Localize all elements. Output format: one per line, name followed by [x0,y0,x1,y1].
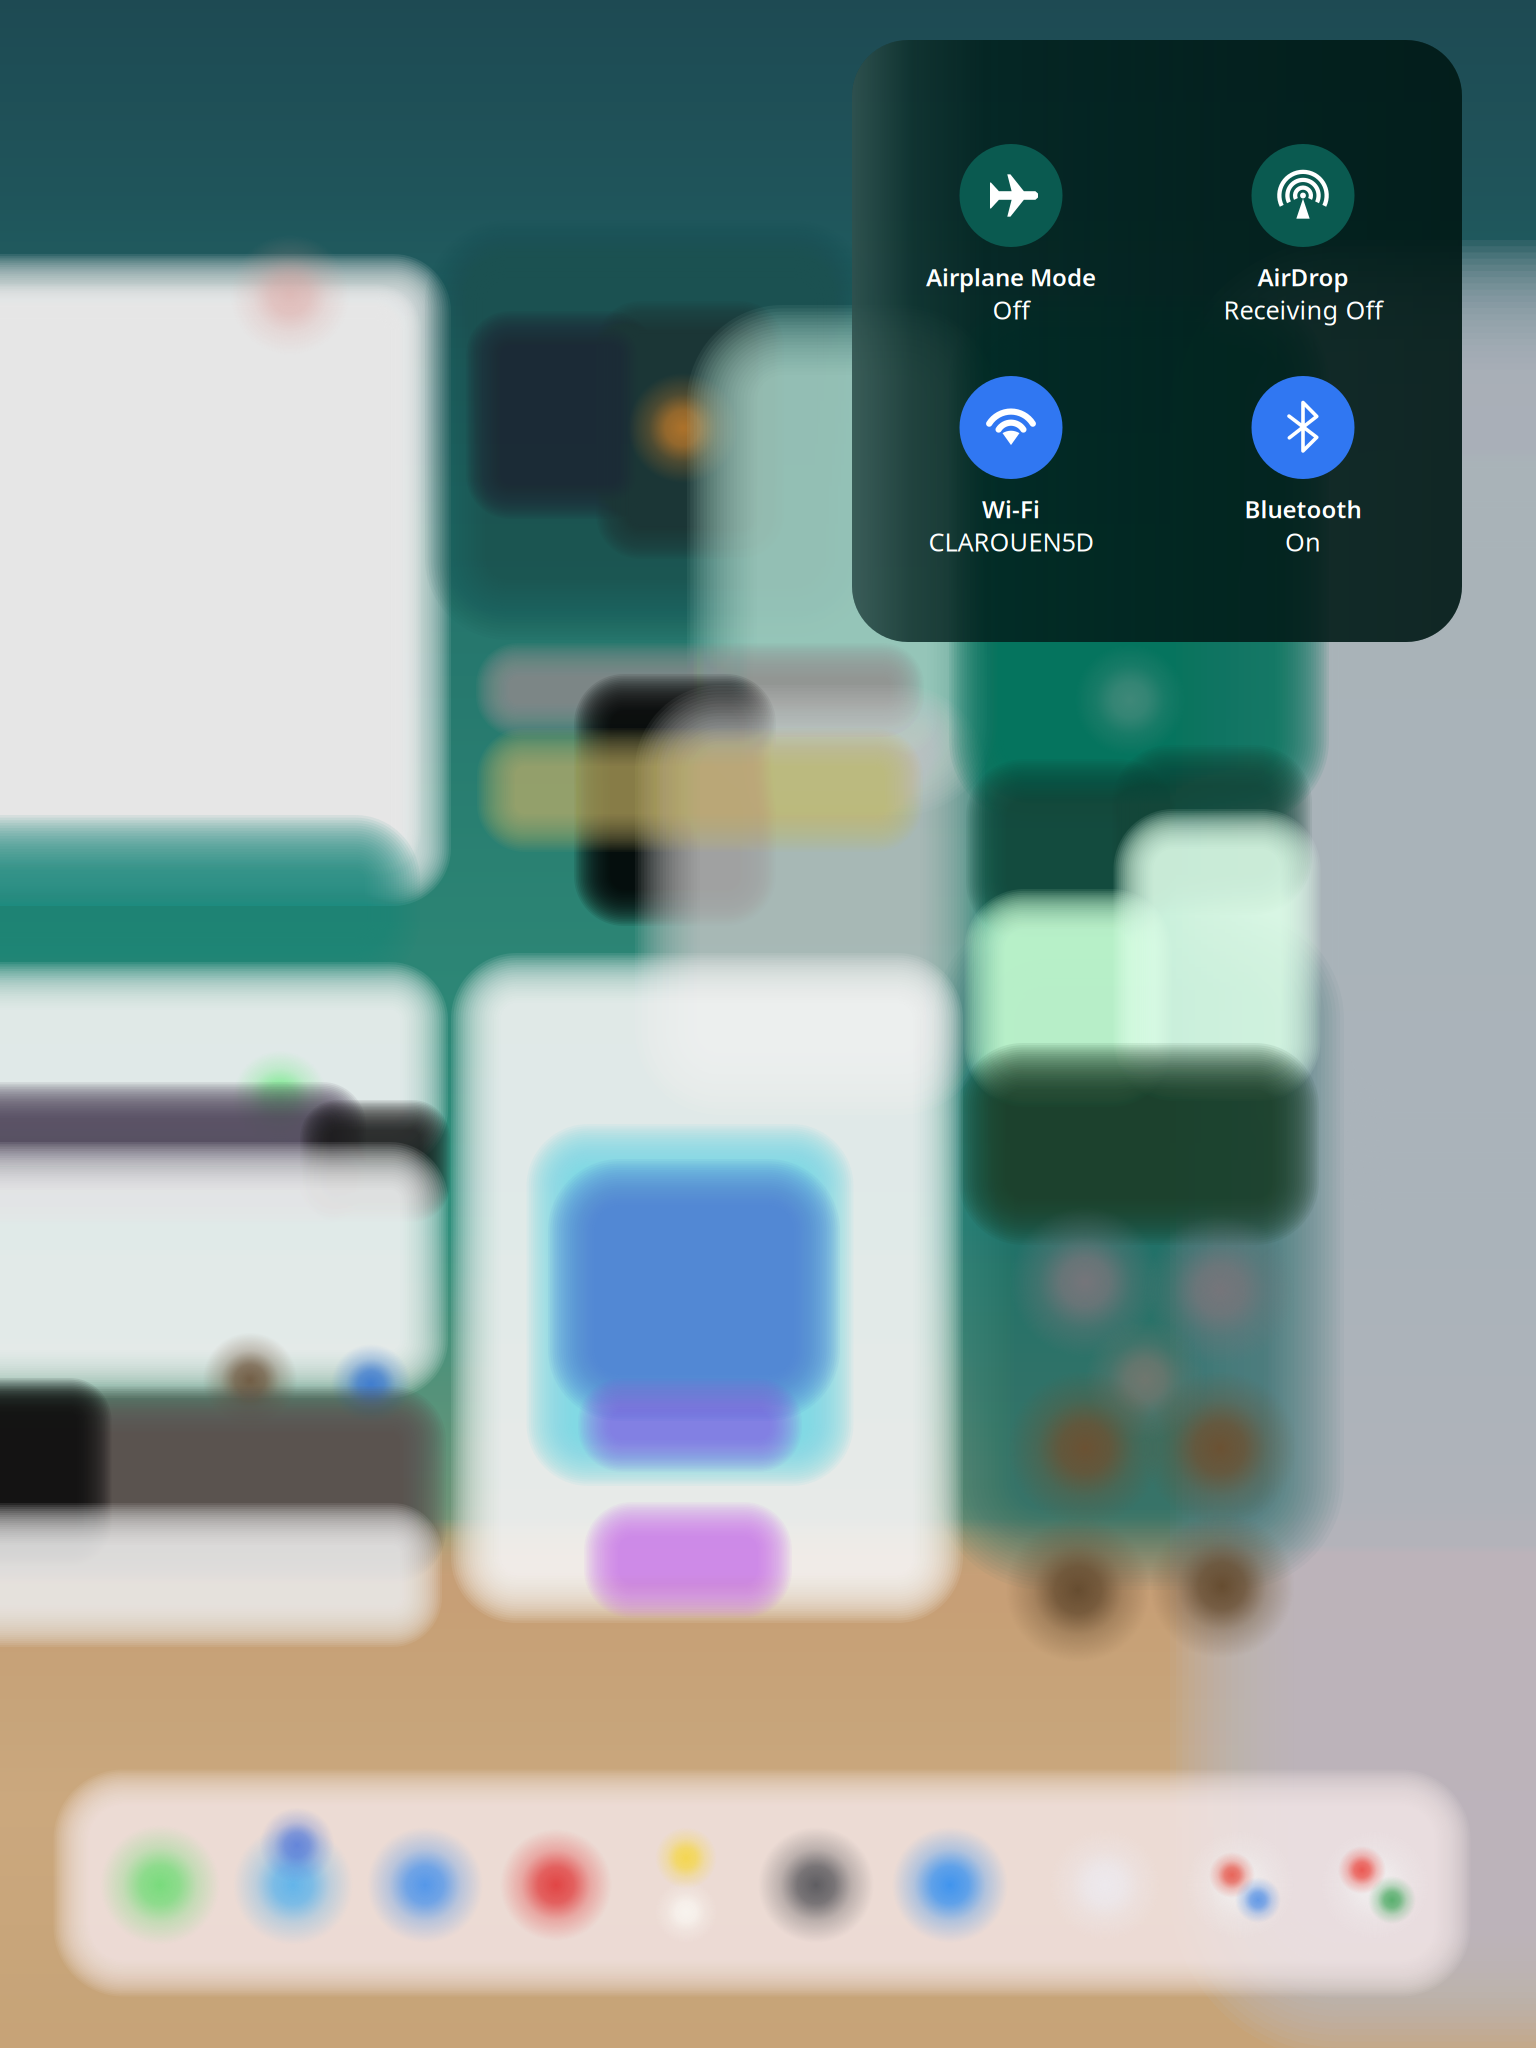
staticText: AirDrop [1257,261,1348,293]
button[interactable]: Wi-Fi [871,376,1151,612]
staticText: Receiving Off [1223,293,1382,326]
staticText: Airplane Mode [926,261,1096,293]
staticText: Wi-Fi [982,493,1040,525]
button[interactable]: Airplane Mode [871,144,1151,380]
staticText: On [1285,525,1321,558]
button[interactable]: AirDrop [1163,144,1443,380]
staticText: Bluetooth [1244,493,1361,525]
staticText: Off [992,293,1029,326]
button[interactable]: Bluetooth [1163,376,1443,612]
staticText: CLAROUEN5D [928,525,1093,558]
